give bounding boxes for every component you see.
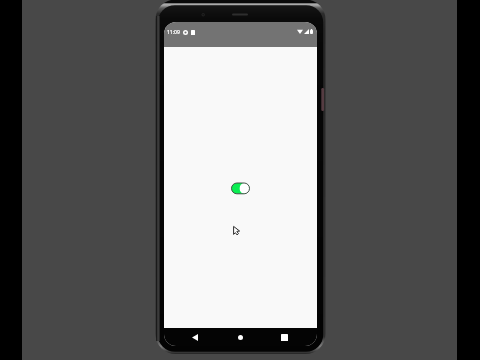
button[interactable]: Toggle switch bbox=[230, 181, 250, 194]
button[interactable]: Back bbox=[187, 329, 203, 345]
staticText: 11:09 bbox=[167, 29, 180, 36]
button[interactable]: Home bbox=[232, 329, 248, 345]
button[interactable]: Recent apps bbox=[276, 329, 292, 345]
